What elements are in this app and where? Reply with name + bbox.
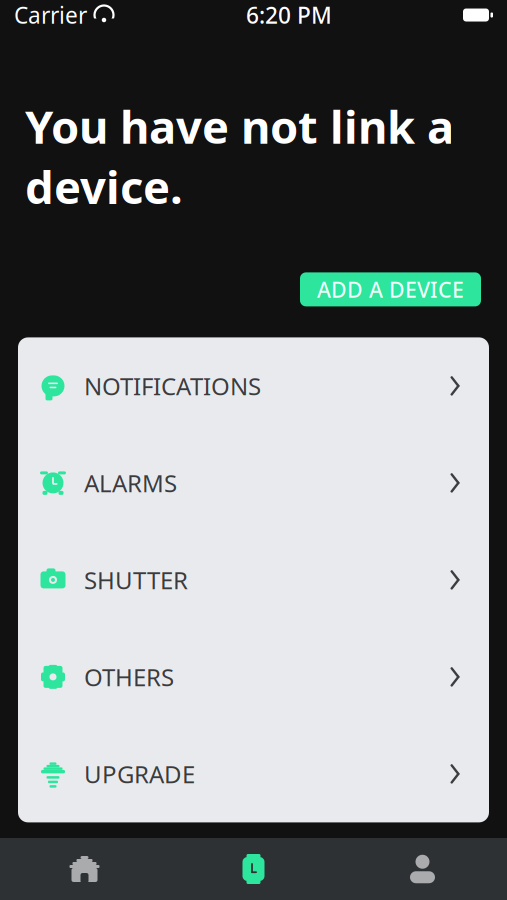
button[interactable]: SHUTTER — [18, 531, 489, 628]
button[interactable]: OTHERS — [18, 628, 489, 725]
staticText: Carrier — [14, 0, 87, 30]
staticText: OTHERS — [84, 661, 174, 693]
button[interactable]: UPGRADE — [18, 725, 489, 822]
staticText: UPGRADE — [84, 758, 195, 790]
staticText: ALARMS — [84, 467, 177, 499]
button[interactable]: Device — [169, 838, 338, 900]
staticText: NOTIFICATIONS — [84, 370, 261, 402]
button[interactable]: ADD A DEVICE — [300, 272, 481, 306]
button[interactable]: Home — [0, 838, 169, 900]
staticText: 6:20 PM — [246, 0, 332, 30]
staticText: ADD A DEVICE — [317, 275, 464, 303]
button[interactable]: Profile — [338, 838, 507, 900]
button[interactable]: ALARMS — [18, 434, 489, 531]
staticText: You have not link a device. — [25, 96, 454, 216]
staticText: SHUTTER — [84, 564, 188, 596]
button[interactable]: NOTIFICATIONS — [18, 337, 489, 434]
